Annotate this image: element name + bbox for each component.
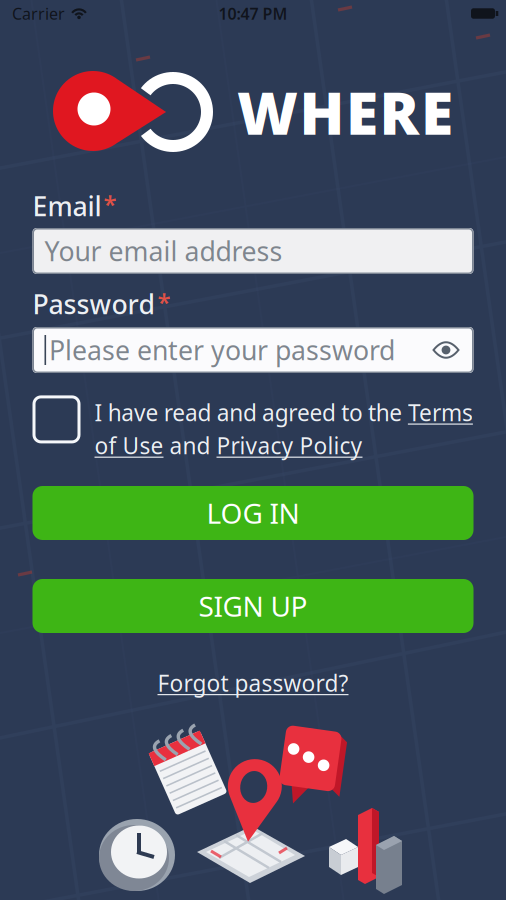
button[interactable]: LOG IN	[32, 486, 473, 540]
staticText: *	[103, 188, 116, 220]
button[interactable]: Forgot password?	[157, 668, 348, 698]
staticText: SIGN UP	[198, 587, 307, 625]
staticText: and	[163, 430, 216, 461]
staticText: WHERE	[237, 73, 453, 151]
staticText: of Use	[94, 430, 163, 461]
staticText: Privacy Policy	[216, 430, 362, 461]
staticText: I have read and agreed to the	[94, 397, 408, 427]
staticText: Your email address	[44, 233, 282, 269]
staticText: Please enter your password	[49, 332, 395, 368]
button[interactable]: of Use	[94, 430, 163, 461]
button[interactable]: Terms	[408, 397, 473, 427]
button[interactable]: Privacy Policy	[216, 430, 362, 461]
staticText: *	[157, 286, 170, 318]
staticText: Email	[32, 188, 101, 224]
staticText: Terms	[408, 397, 473, 427]
staticText: Forgot password?	[157, 668, 348, 698]
staticText: Carrier	[12, 3, 65, 24]
staticText: Password	[32, 286, 155, 322]
staticText: LOG IN	[206, 494, 299, 532]
button[interactable]: SIGN UP	[32, 579, 473, 633]
button[interactable]: Show password	[432, 340, 459, 359]
staticText: 10:47 PM	[218, 3, 287, 24]
button[interactable]: I have read and agreed to the Terms of U…	[32, 395, 80, 443]
